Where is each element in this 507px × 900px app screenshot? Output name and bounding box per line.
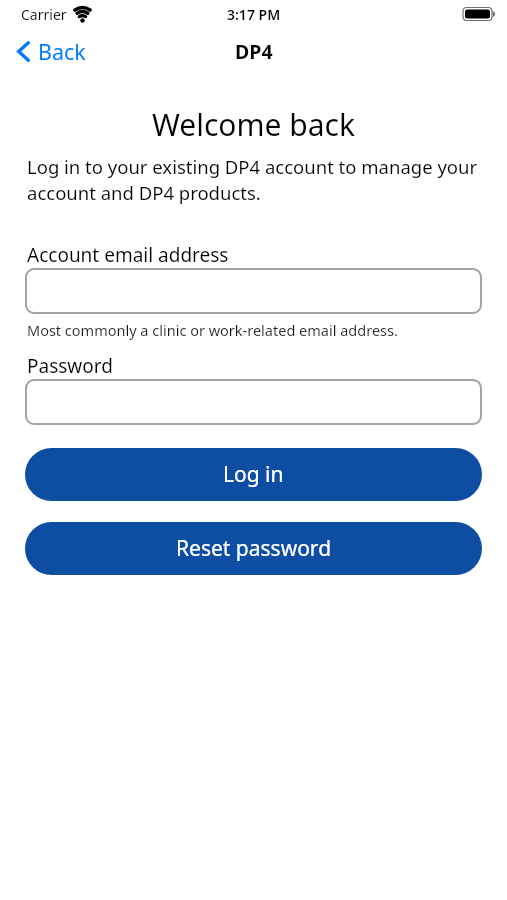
staticText: Log in to your existing DP4 account to m… [27, 154, 478, 205]
staticText: Carrier [21, 5, 67, 24]
staticText: Back [38, 37, 86, 66]
button[interactable]: Back [17, 37, 86, 66]
staticText: DP4 [235, 38, 273, 65]
staticText: Account email address [27, 242, 229, 268]
staticText: Reset password [176, 534, 332, 563]
button[interactable] [25, 268, 482, 314]
button[interactable] [25, 379, 482, 425]
staticText: 3:17 PM [227, 5, 281, 24]
staticText: Most commonly a clinic or work-related e… [27, 320, 398, 340]
button[interactable]: Reset password [25, 522, 482, 575]
staticText: Log in [223, 460, 284, 489]
staticText: Password [27, 353, 113, 379]
staticText: Welcome back [0, 104, 507, 145]
button[interactable]: Log in [25, 448, 482, 501]
